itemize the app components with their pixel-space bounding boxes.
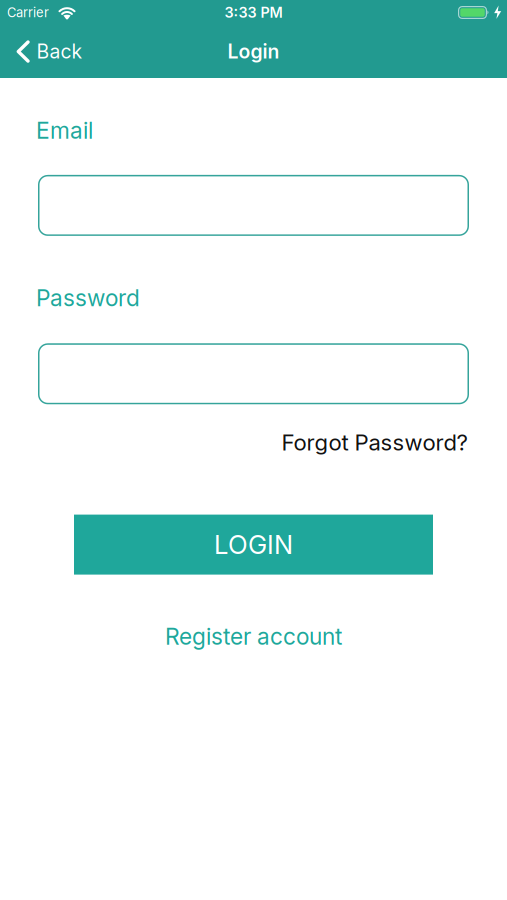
staticText: Email bbox=[36, 117, 93, 144]
staticText: LOGIN bbox=[214, 529, 293, 560]
button[interactable]: LOGIN bbox=[74, 515, 433, 575]
staticText: Login bbox=[227, 40, 279, 63]
button[interactable]: Email bbox=[38, 175, 469, 236]
button[interactable]: Forgot Password? bbox=[281, 429, 467, 456]
staticText: Register account bbox=[165, 623, 342, 650]
button[interactable]: Back bbox=[0, 40, 82, 63]
button[interactable]: Password bbox=[38, 343, 469, 404]
staticText: Forgot Password? bbox=[281, 429, 467, 456]
staticText: Carrier bbox=[7, 5, 49, 20]
staticText: Password bbox=[36, 284, 140, 311]
button[interactable]: Register account bbox=[165, 623, 342, 650]
staticText: Back bbox=[36, 40, 82, 63]
staticText: 3:33 PM bbox=[224, 4, 282, 21]
